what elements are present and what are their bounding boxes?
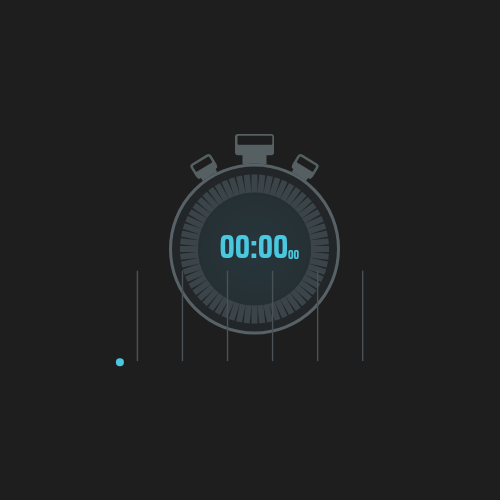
button[interactable]: Stopwatch — [0, 0, 500, 500]
